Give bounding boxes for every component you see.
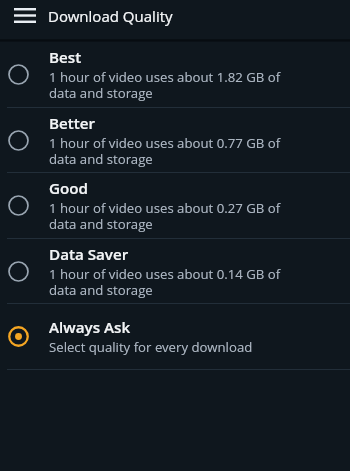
button[interactable]: Better <box>0 108 350 173</box>
staticText: Best <box>49 47 82 68</box>
staticText: Always Ask <box>49 317 131 338</box>
button[interactable]: Good <box>0 173 350 239</box>
staticText: Download Quality <box>48 6 173 26</box>
button[interactable]: Data Saver <box>0 239 350 304</box>
staticText: 1 hour of video uses about 1.82 GB of da… <box>49 68 281 102</box>
staticText: Good <box>49 178 89 199</box>
button[interactable]: Open navigation menu <box>0 0 48 35</box>
button[interactable]: Best <box>0 42 350 108</box>
button[interactable]: Always Ask <box>0 304 350 370</box>
staticText: 1 hour of video uses about 0.27 GB of da… <box>49 199 281 233</box>
staticText: 1 hour of video uses about 0.77 GB of da… <box>49 134 281 168</box>
staticText: Select quality for every download <box>49 338 253 356</box>
staticText: 1 hour of video uses about 0.14 GB of da… <box>49 265 281 299</box>
staticText: Better <box>49 113 96 134</box>
staticText: Data Saver <box>49 244 129 265</box>
